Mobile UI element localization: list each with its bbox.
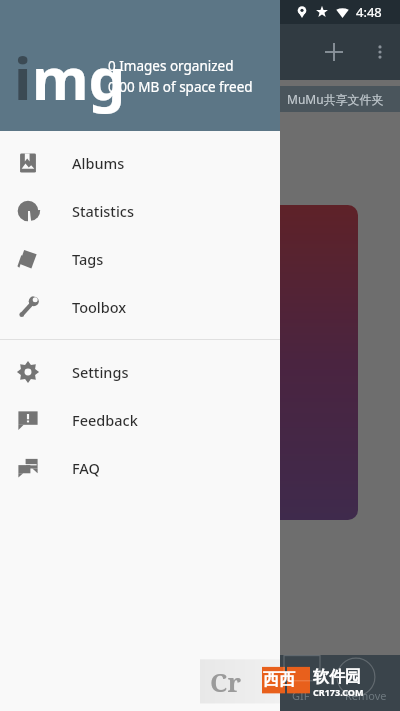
staticText: Settings [72, 362, 129, 382]
button[interactable]: Toolbox [0, 283, 280, 331]
button[interactable]: GIF [292, 688, 310, 703]
staticText: Albums [72, 153, 125, 173]
button[interactable]: Remove [345, 688, 387, 703]
staticText: Toolbox [72, 297, 127, 317]
button[interactable]: Settings [0, 348, 280, 396]
button[interactable]: Statistics [0, 187, 280, 235]
staticText: Statistics [72, 201, 134, 221]
staticText: CR173.COM [313, 686, 364, 698]
staticText: Tags [72, 249, 104, 269]
staticText: GIF [292, 688, 310, 703]
staticText: Feedback [72, 410, 138, 430]
staticText: 西西 [263, 670, 295, 690]
staticText: 0 Images organized [108, 57, 234, 75]
button[interactable]: FAQ [0, 444, 280, 492]
staticText: mg [32, 38, 126, 117]
button[interactable]: Add [318, 36, 350, 68]
button[interactable]: More options [364, 36, 396, 68]
button[interactable]: Albums [0, 139, 280, 187]
staticText: FAQ [72, 458, 100, 478]
staticText: i [14, 38, 32, 117]
button[interactable]: Feedback [0, 396, 280, 444]
staticText: 0.00 MB of space freed [108, 78, 253, 96]
staticText: Cr [210, 664, 241, 699]
staticText: Remove [345, 688, 387, 703]
staticText: 4:48 [356, 3, 382, 21]
staticText: MuMu共享文件夹 [287, 91, 384, 107]
button[interactable]: i [0, 0, 280, 131]
staticText: 软件园 [313, 667, 361, 687]
button[interactable]: Tags [0, 235, 280, 283]
button[interactable] [250, 205, 358, 520]
